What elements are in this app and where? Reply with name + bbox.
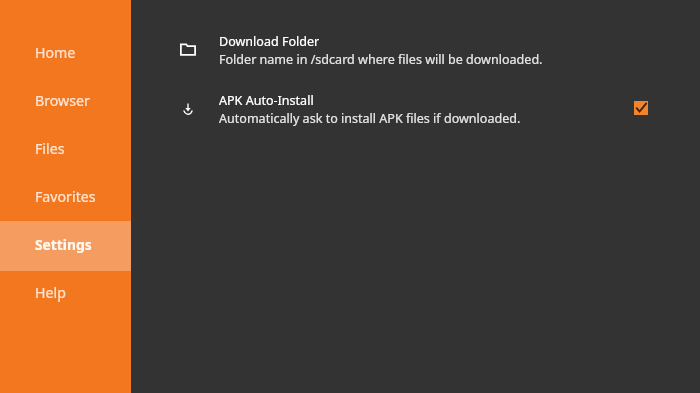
button[interactable]: Files <box>0 124 131 172</box>
button[interactable]: Browser <box>0 76 131 124</box>
staticText: Files <box>35 139 65 158</box>
button[interactable]: Favorites <box>0 172 131 220</box>
button[interactable]: Toggle APK auto-install <box>634 101 648 115</box>
staticText: Download Folder <box>219 33 320 50</box>
staticText: Folder name in /sdcard where files will … <box>219 51 543 68</box>
button[interactable]: Settings <box>0 220 131 268</box>
button[interactable]: Download folder setting <box>131 30 700 66</box>
button[interactable]: APK auto-install setting <box>131 89 700 125</box>
staticText: Favorites <box>35 187 96 206</box>
button[interactable]: Help <box>0 268 131 316</box>
staticText: Browser <box>35 91 90 110</box>
staticText: APK Auto-Install <box>219 92 314 109</box>
staticText: Settings <box>35 235 92 254</box>
staticText: Automatically ask to install APK files i… <box>219 110 521 127</box>
button[interactable]: Home <box>0 28 131 76</box>
staticText: Help <box>35 283 66 302</box>
staticText: Home <box>35 43 76 62</box>
